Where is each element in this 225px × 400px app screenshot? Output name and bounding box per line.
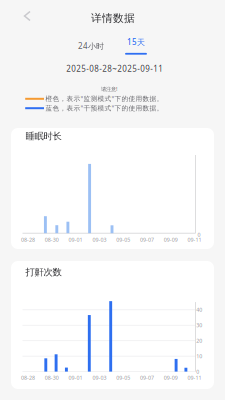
staticText: 20 [196,337,202,344]
staticText: 24小时 [78,41,104,51]
staticText: 08-28 [21,374,35,381]
staticText: 15天 [127,37,145,47]
staticText: 请注意! [101,85,117,93]
staticText: 08-28 [21,236,35,243]
staticText: 09-07 [140,374,154,381]
staticText: 打鼾次数 [26,266,62,278]
staticText: 09-03 [92,374,106,381]
staticText: 08-30 [45,236,59,243]
staticText: 蓝色，表示"干预模式"下的使用数据。 [45,104,163,112]
staticText: 09-11 [188,374,202,381]
staticText: 09-01 [69,236,83,243]
staticText: 09-11 [188,236,202,243]
staticText: 09-03 [92,236,106,243]
button[interactable]: 24小时 [75,38,107,54]
staticText: 09-09 [164,236,178,243]
staticText: 30 [196,322,202,329]
staticText: 09-01 [69,374,83,381]
staticText: 0 [196,368,199,375]
button[interactable]: 15天 [123,34,149,58]
staticText: 40 [196,306,202,313]
staticText: 2025-08-28~2025-09-11 [66,63,163,74]
staticText: 睡眠时长 [26,130,62,142]
staticText: 09-05 [116,374,130,381]
staticText: 09-05 [116,236,130,243]
staticText: 09-07 [140,236,154,243]
staticText: 详情数据 [91,12,135,25]
staticText: 08-30 [45,374,59,381]
staticText: 09-09 [164,374,178,381]
staticText: 橙色，表示"监测模式"下的使用数据。 [45,94,163,103]
staticText: 0 [198,231,201,238]
button[interactable]: Back [13,2,41,30]
staticText: 10 [196,353,202,360]
